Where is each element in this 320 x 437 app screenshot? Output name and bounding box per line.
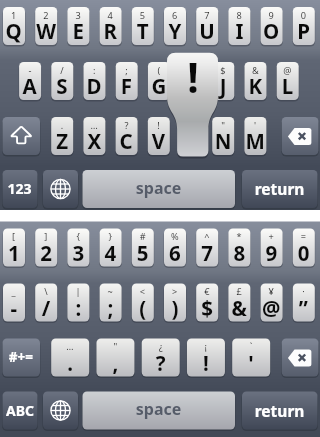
button[interactable]: Keyboard bbox=[0, 0, 320, 437]
